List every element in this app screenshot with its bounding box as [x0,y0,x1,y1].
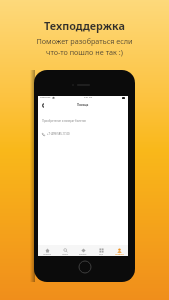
button[interactable]: Главная [38,245,56,256]
staticText: Поиск [62,253,68,256]
button[interactable]: Назад [38,100,47,111]
button[interactable]: Профиль [110,245,128,256]
staticText: 4:57 PM [84,96,93,99]
button[interactable]: Билеты [74,245,92,256]
staticText: +7 (499) 585-17-00 [47,132,70,136]
button[interactable]: +7 (499) 585-17-00 [38,129,128,139]
staticText: Еще [99,253,104,256]
staticText: Оператор [40,96,51,99]
staticText: Помощь [77,103,89,107]
button[interactable]: Еще [92,245,110,256]
staticText: Билеты [79,253,87,256]
staticText: Приобретение и возврат билетов [42,119,86,123]
staticText: Профиль [115,253,124,256]
staticText: Техподдержка [44,18,125,33]
button[interactable]: Поиск [56,245,74,256]
staticText: Поможет разобраться если что-то пошло не… [36,36,133,57]
staticText: Главная [43,253,51,256]
